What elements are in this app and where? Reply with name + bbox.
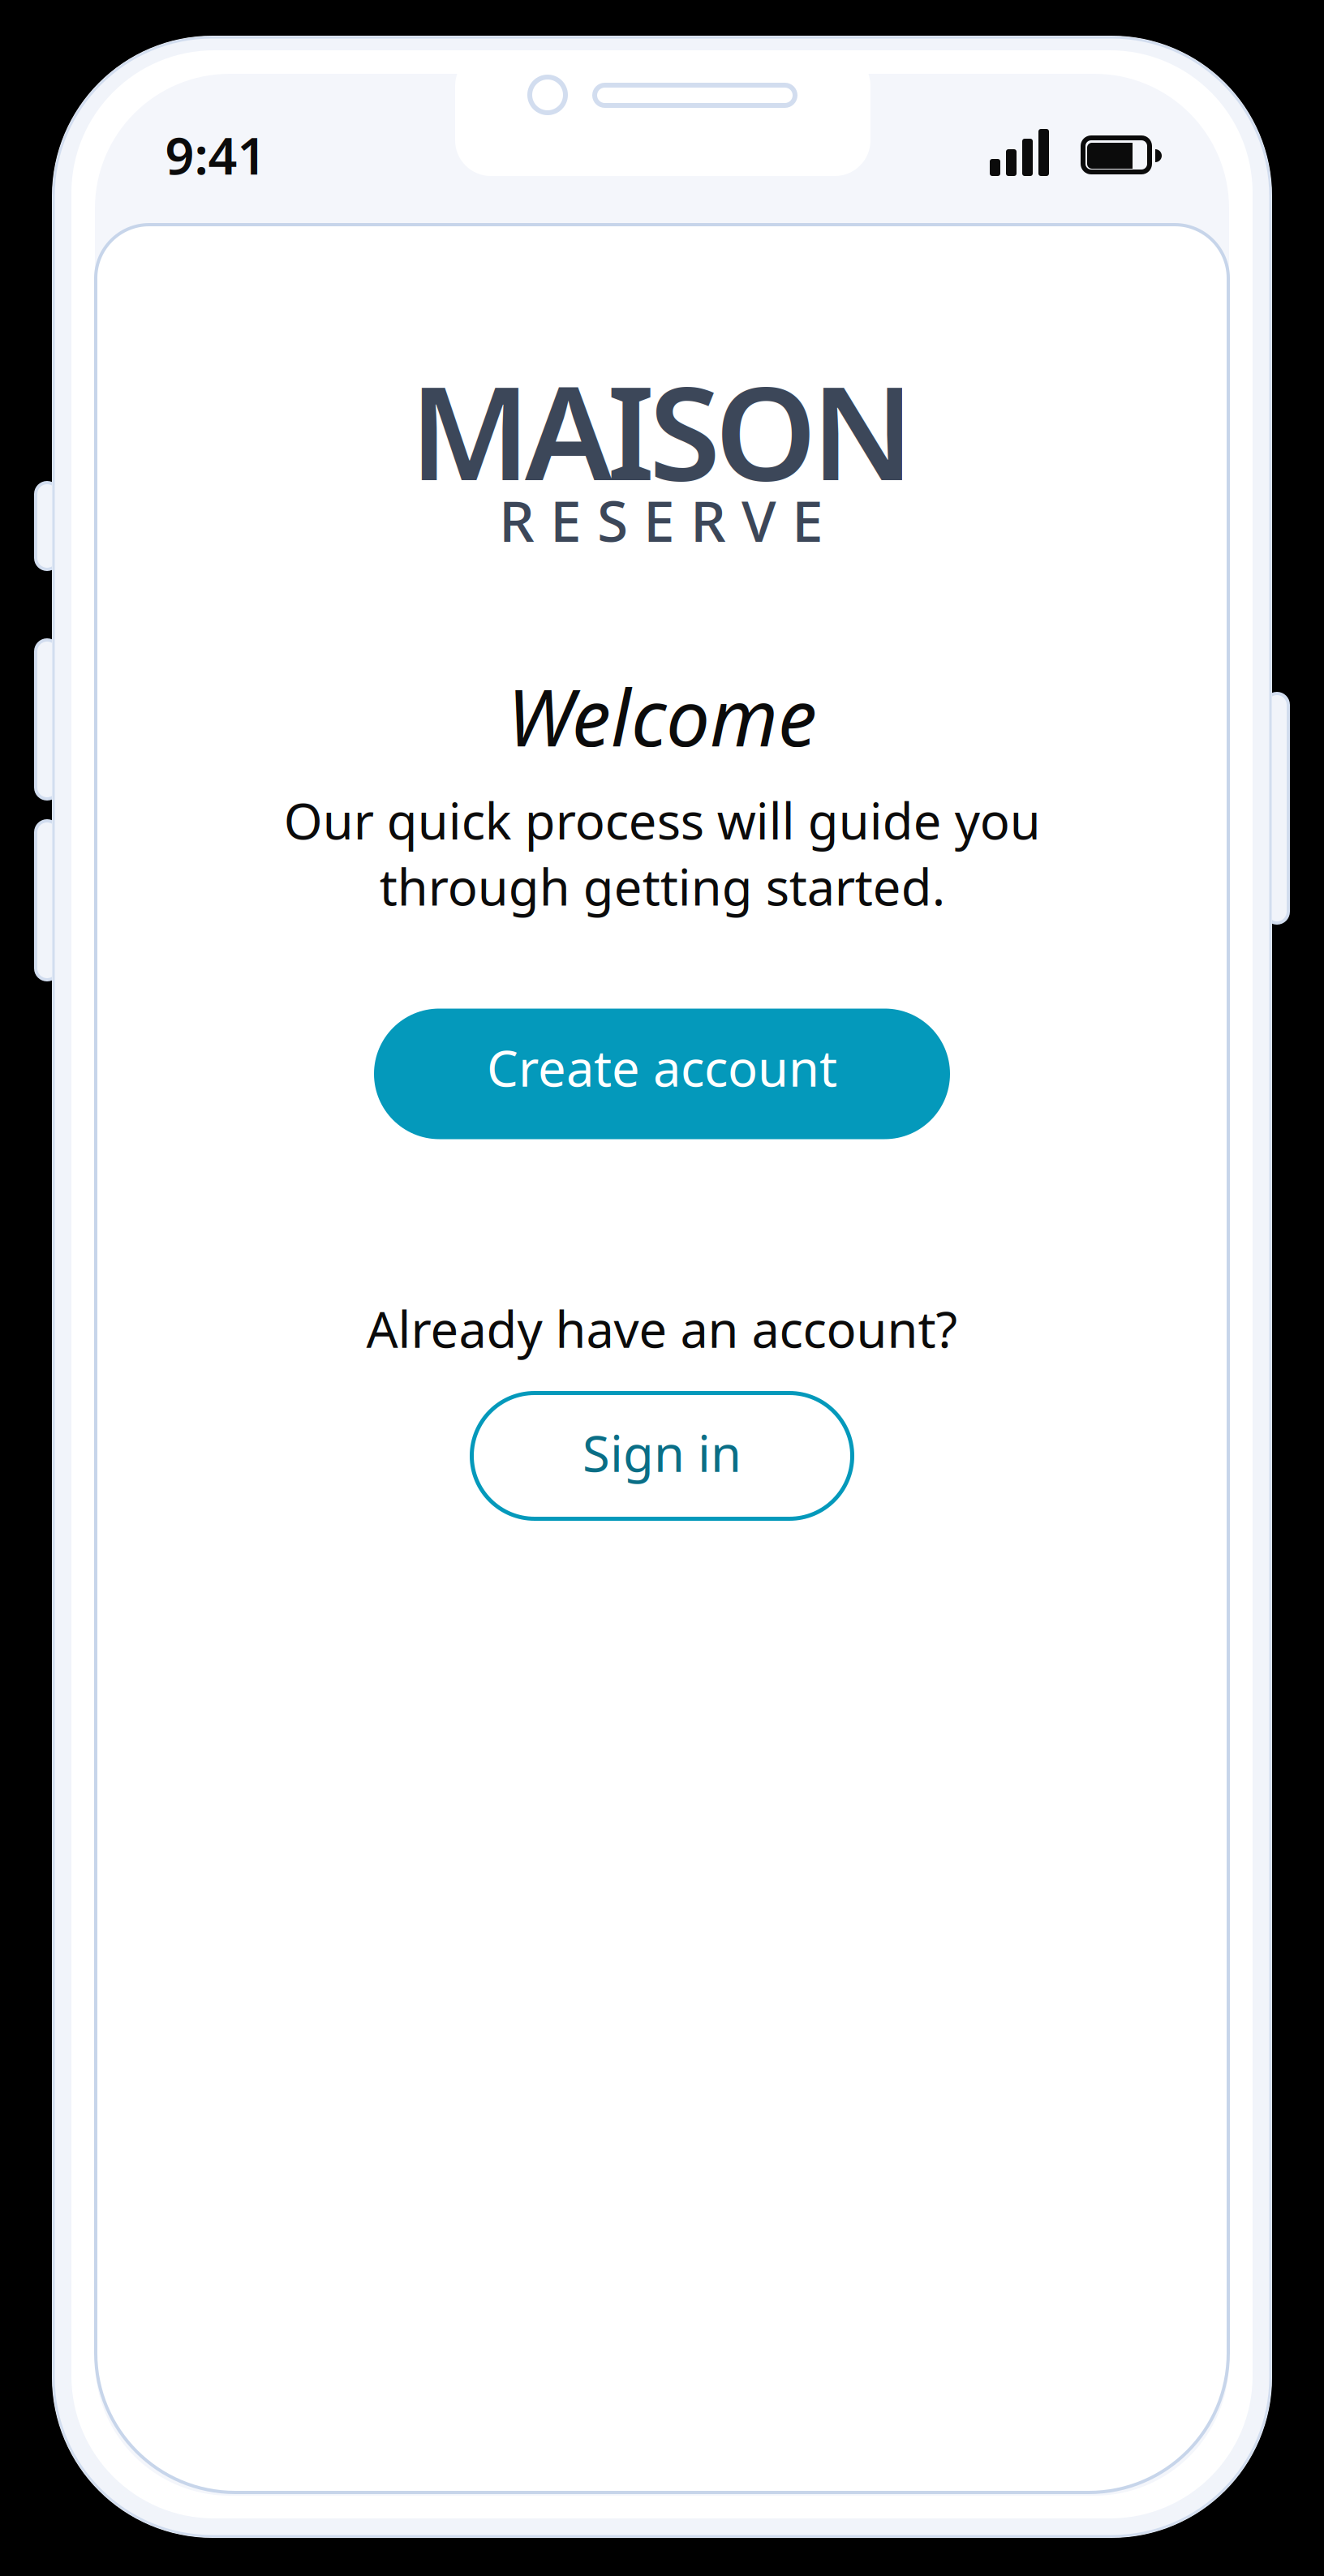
staticText: Already have an account?: [366, 1296, 958, 1362]
button[interactable]: Create account: [374, 1009, 950, 1139]
staticText: Our quick process will guide you through…: [284, 787, 1040, 919]
staticText: 9:41: [165, 121, 267, 189]
staticText: Sign in: [582, 1420, 742, 1486]
staticText: Create account: [487, 1034, 837, 1100]
staticText: MAISON: [410, 344, 914, 516]
staticText: RESERVE: [499, 483, 823, 557]
button[interactable]: Sign in: [470, 1391, 854, 1520]
staticText: Welcome: [507, 665, 817, 768]
